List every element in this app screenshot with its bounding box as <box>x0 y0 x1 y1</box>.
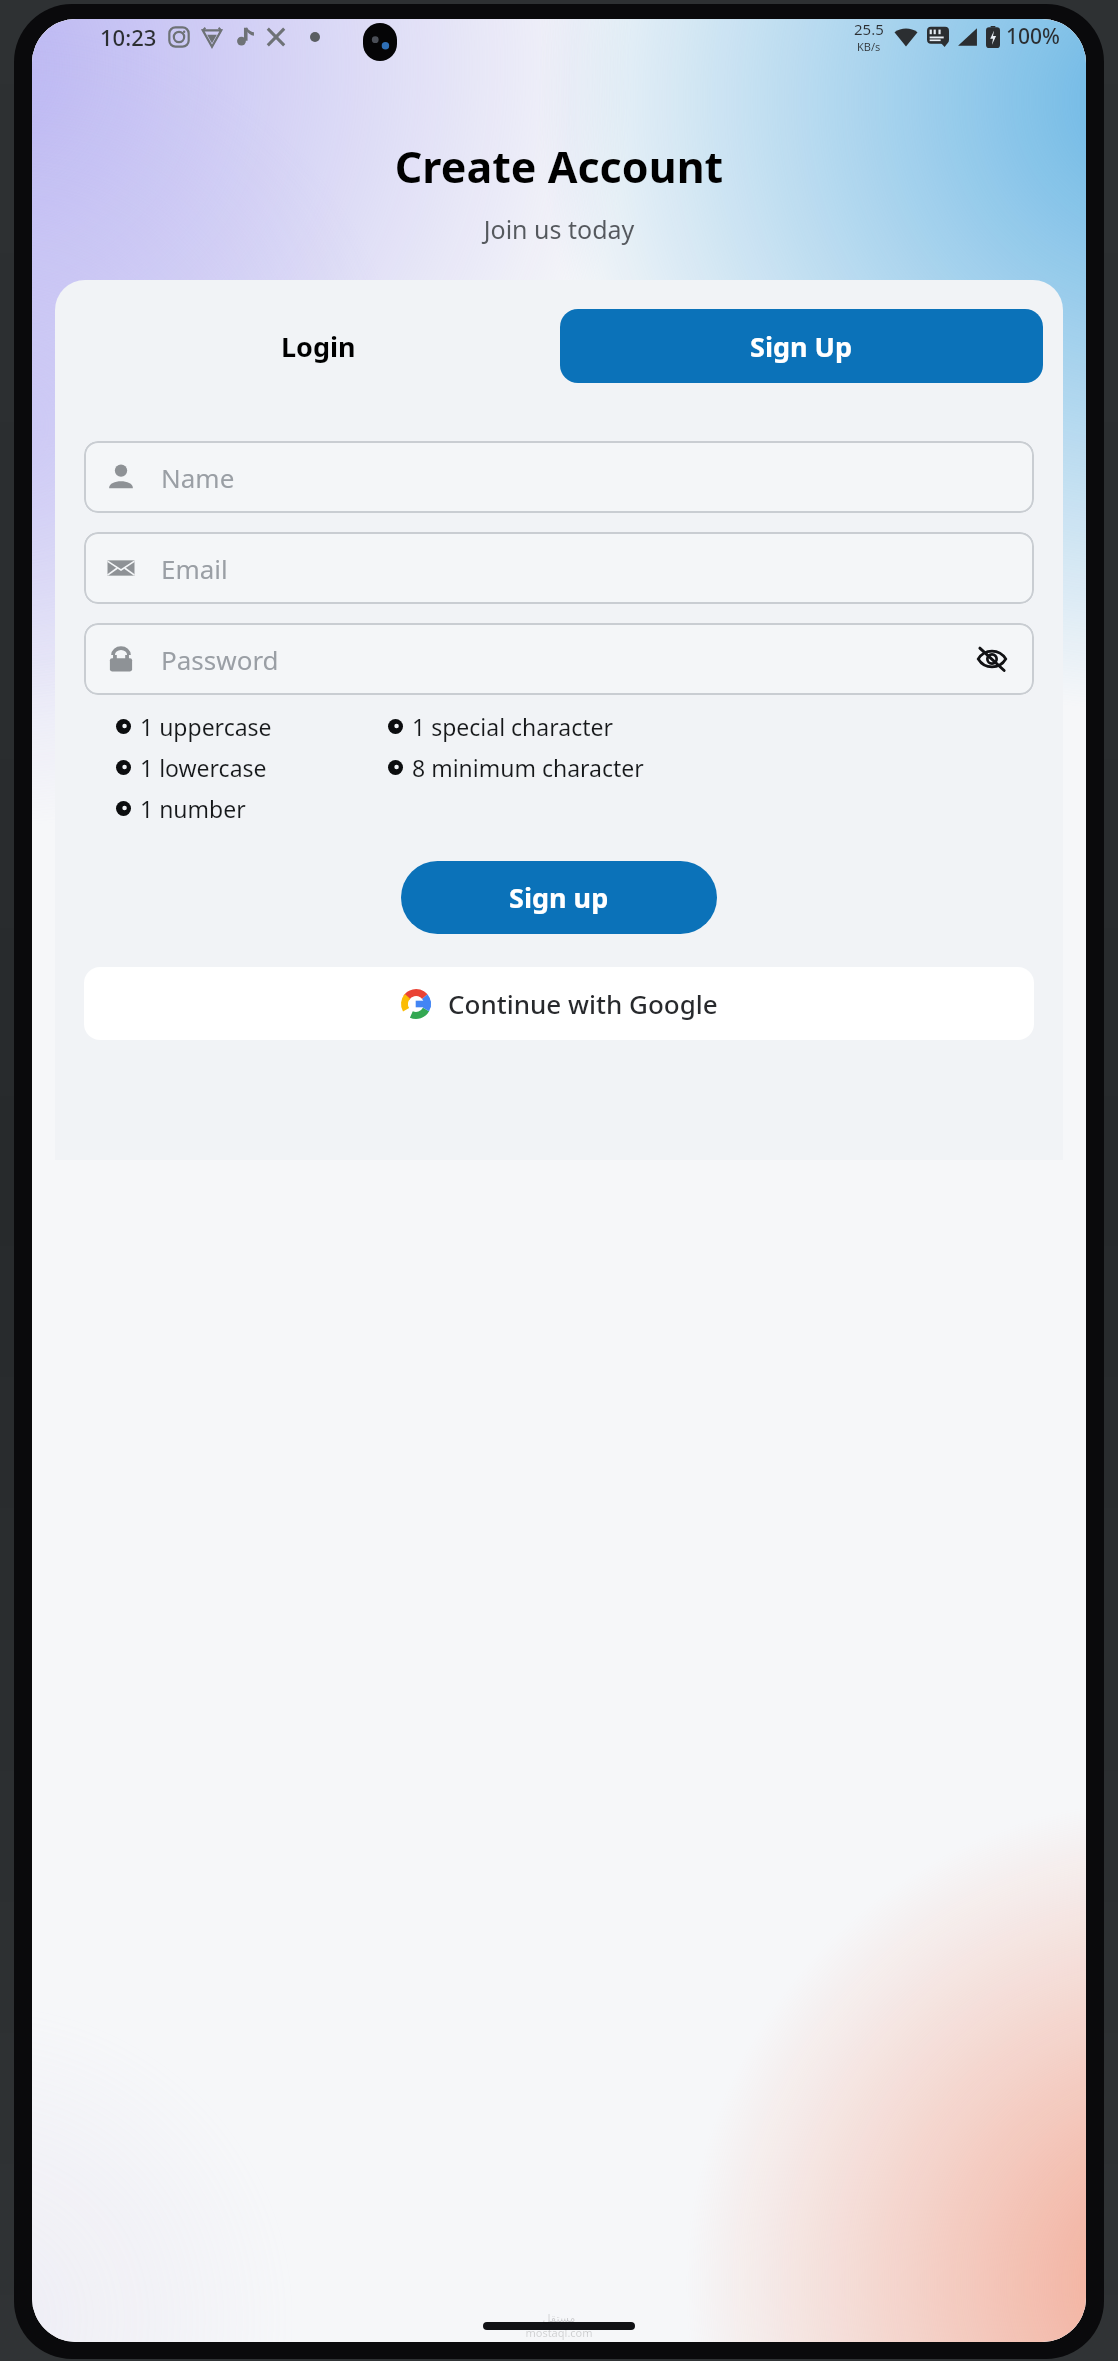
staticText: 8 minimum character <box>412 752 644 783</box>
staticText: 1 lowercase <box>140 752 267 783</box>
button[interactable]: Continue with Google <box>84 967 1034 1040</box>
staticText: Sign up <box>509 879 609 916</box>
staticText: Email <box>161 551 228 586</box>
staticText: 1 uppercase <box>140 711 272 742</box>
button[interactable]: Sign up <box>401 861 717 934</box>
button[interactable]: Sign Up <box>560 309 1043 383</box>
staticText: مستقل mostaql.com <box>525 2312 593 2340</box>
staticText: 100% <box>1006 22 1060 51</box>
button[interactable]: Password <box>84 623 1034 695</box>
button[interactable]: Login <box>77 310 560 383</box>
staticText: 10:23 <box>100 22 157 52</box>
staticText: Password <box>161 642 279 677</box>
button[interactable]: Email <box>84 532 1034 604</box>
staticText: Name <box>161 460 235 495</box>
staticText: Login <box>281 328 356 365</box>
staticText: Sign Up <box>750 328 853 365</box>
staticText: KB/s <box>857 39 881 54</box>
staticText: Continue with Google <box>448 986 718 1021</box>
staticText: 25.5 <box>854 19 884 39</box>
staticText: Create Account <box>32 137 1086 196</box>
button[interactable]: Name <box>84 441 1034 513</box>
staticText: 1 number <box>140 793 246 824</box>
button[interactable]: Show password <box>972 639 1012 679</box>
staticText: 1 special character <box>412 711 613 742</box>
staticText: Join us today <box>32 212 1086 246</box>
